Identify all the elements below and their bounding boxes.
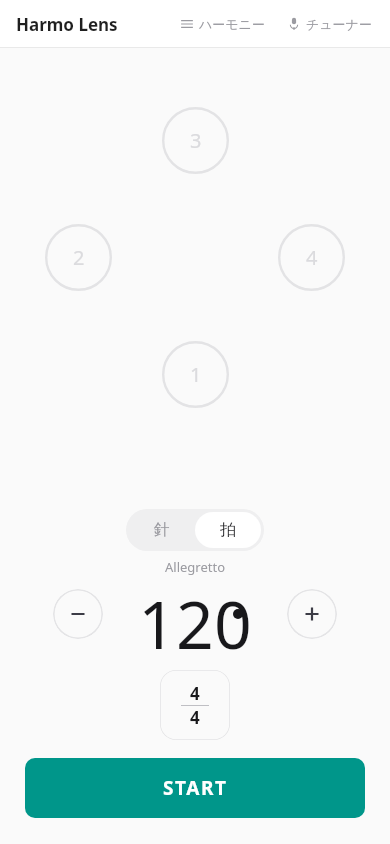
button[interactable]: START — [25, 758, 365, 818]
staticText: Harmo Lens — [16, 13, 118, 36]
button[interactable]: 針 — [129, 512, 195, 548]
staticText: 4 — [306, 244, 318, 271]
staticText: チューナー — [306, 16, 372, 32]
staticText: 針 — [154, 520, 170, 540]
button[interactable]: ハーモニー — [176, 10, 269, 38]
staticText: START — [163, 775, 228, 801]
staticText: 4 — [190, 706, 200, 729]
button[interactable]: Decrease tempo — [53, 589, 103, 639]
staticText: 4 — [190, 682, 200, 705]
staticText: Allegretto — [165, 558, 226, 576]
button[interactable]: Increase tempo — [287, 589, 337, 639]
staticText: 2 — [73, 244, 85, 271]
staticText: 1 — [190, 361, 202, 388]
staticText: 拍 — [220, 520, 236, 540]
staticText: 3 — [190, 127, 202, 154]
staticText: ハーモニー — [199, 16, 265, 32]
button[interactable]: Time signature 4/4 — [160, 670, 230, 740]
button[interactable]: チューナー — [283, 10, 376, 38]
button[interactable]: 拍 — [195, 512, 261, 548]
staticText: 120 — [138, 578, 252, 650]
